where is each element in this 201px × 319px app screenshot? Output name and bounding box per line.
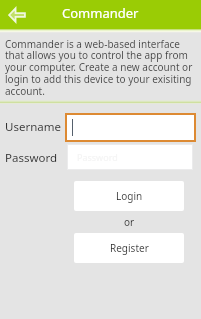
staticText: Register [110, 241, 149, 255]
button[interactable]: Password [67, 144, 193, 170]
button[interactable]: Back [6, 5, 27, 24]
button[interactable] [66, 114, 195, 141]
staticText: or [124, 215, 135, 229]
staticText: Commander [62, 4, 139, 22]
staticText: Login [116, 189, 143, 203]
staticText: Username [5, 119, 61, 135]
button[interactable]: Register [74, 233, 184, 263]
staticText: Password [77, 151, 118, 163]
button[interactable]: Login [74, 181, 184, 211]
staticText: Commander is a web-based interface that … [5, 37, 195, 98]
staticText: Password [5, 150, 58, 166]
